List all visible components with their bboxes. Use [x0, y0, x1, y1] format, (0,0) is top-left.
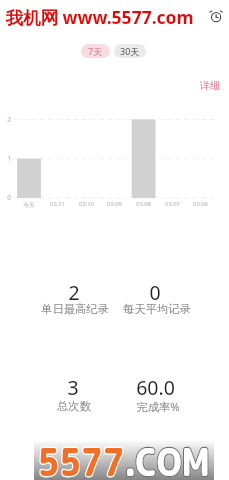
staticText: 0 — [7, 193, 11, 202]
staticText: 5577.COM — [38, 435, 210, 480]
staticText: 2 — [7, 115, 11, 124]
staticText: 0 — [149, 279, 161, 305]
staticText: 30天 — [120, 45, 140, 57]
button[interactable]: 详细 — [196, 78, 223, 92]
staticText: 我机网 www.5577.com — [5, 5, 194, 29]
staticText: 05.07 — [165, 200, 180, 208]
staticText: 每天平均记录 — [123, 302, 191, 316]
staticText: 单日最高纪录 — [41, 302, 109, 316]
staticText: 总次数 — [57, 399, 91, 413]
staticText: 完成率% — [136, 399, 180, 414]
staticText: 05.06 — [193, 200, 208, 208]
staticText: 2 — [68, 279, 80, 305]
staticText: 5577.COM — [38, 435, 210, 480]
staticText: 1 — [7, 154, 11, 163]
staticText: 3 — [67, 374, 79, 400]
staticText: 05.10 — [79, 200, 94, 208]
button[interactable]: 7天 — [81, 44, 110, 58]
staticText: 今天 — [23, 201, 35, 208]
staticText: 05.11 — [50, 200, 65, 208]
staticText: 7天 — [88, 45, 103, 57]
staticText: 05.09 — [107, 200, 122, 208]
staticText: 05.08 — [136, 200, 151, 208]
staticText: 60.0 — [136, 374, 175, 400]
button[interactable]: 30天 — [114, 44, 146, 58]
other: Alarm — [206, 7, 227, 28]
staticText: 详细 — [200, 79, 220, 92]
